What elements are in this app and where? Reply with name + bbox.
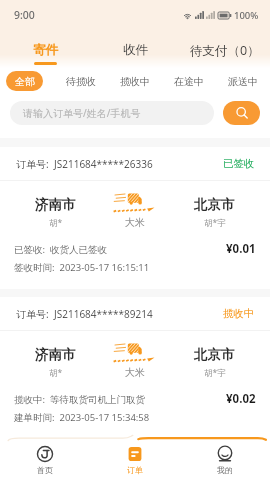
staticText: 收件 (123, 42, 148, 58)
staticText: 全部 (15, 75, 35, 88)
button[interactable]: 请输入订单号/姓名/手机号 (10, 101, 214, 125)
staticText: 订单号: (16, 307, 54, 321)
button[interactable]: 订单号: (0, 297, 270, 439)
staticText: 大米 (125, 216, 145, 229)
staticText: 胡*宇 (204, 367, 226, 379)
button[interactable]: 在途中 (172, 71, 206, 91)
button[interactable]: 搜索 (223, 101, 260, 125)
button[interactable]: 订单 (90, 434, 180, 480)
staticText: 请输入订单号/姓名/手机号 (23, 106, 141, 120)
staticText: 我的 (217, 465, 233, 475)
staticText: 大米 (125, 366, 145, 379)
button[interactable]: 待揽收 (64, 71, 98, 91)
staticText: ¥0.01 (226, 241, 256, 257)
staticText: 济南市 (35, 196, 76, 213)
staticText: 北京市 (194, 346, 235, 363)
staticText: 订单 (127, 465, 143, 475)
staticText: 胡*宇 (204, 217, 226, 229)
staticText: 济南市 (35, 346, 76, 363)
button[interactable]: 寄件 (0, 30, 90, 68)
staticText: 100% (234, 9, 259, 22)
staticText: 派送中 (228, 75, 258, 88)
button[interactable]: 订单号: (0, 147, 270, 289)
staticText: 在途中 (174, 75, 204, 88)
staticText: 待揽收 (66, 75, 96, 88)
staticText: 寄件 (33, 42, 58, 58)
staticText: 北京市 (194, 196, 235, 213)
button[interactable]: 我的 (180, 434, 270, 480)
button[interactable]: 待支付（0） (180, 30, 270, 68)
staticText: 待支付（0） (190, 42, 260, 59)
staticText: 已签收 (223, 157, 255, 170)
staticText: ¥0.02 (226, 391, 256, 407)
button[interactable]: 派送中 (226, 71, 260, 91)
staticText: JS211684*****26336 (54, 157, 153, 171)
button[interactable]: 收件 (90, 30, 180, 68)
button[interactable]: 全部 (6, 71, 43, 91)
button[interactable]: 揽收中 (118, 71, 152, 91)
button[interactable]: 首页 (0, 434, 90, 480)
staticText: 胡* (49, 367, 63, 379)
staticText: 揽收中 (120, 75, 150, 88)
staticText: 建单时间: 2023-05-17 15:34:58 (14, 411, 150, 424)
staticText: 9:00 (14, 8, 35, 22)
staticText: JS211684*****89214 (54, 307, 153, 321)
staticText: 已签收: 收货人已签收 (14, 243, 107, 256)
staticText: 订单号: (16, 157, 54, 171)
staticText: 揽收中: 等待取货司机上门取货 (14, 393, 145, 406)
staticText: 揽收中 (223, 307, 255, 320)
staticText: 签收时间: 2023-05-17 16:15:11 (14, 261, 150, 274)
staticText: 胡* (49, 217, 63, 229)
staticText: 首页 (37, 465, 53, 475)
